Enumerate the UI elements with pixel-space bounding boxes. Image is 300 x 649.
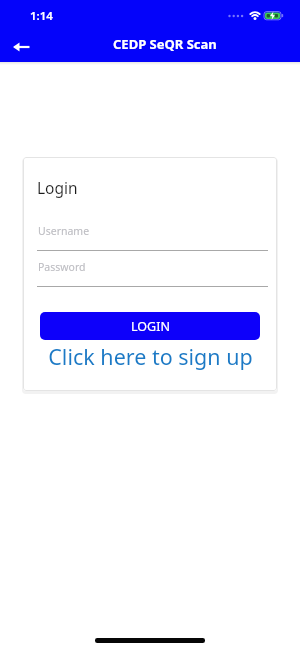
- staticText: 1:14: [30, 8, 53, 24]
- staticText: Click here to sign up: [48, 342, 253, 370]
- button[interactable]: Username: [37, 217, 268, 251]
- button[interactable]: [5, 35, 37, 59]
- staticText: Login: [37, 177, 78, 198]
- button[interactable]: LOGIN: [40, 312, 260, 340]
- button[interactable]: Click here to sign up: [23, 342, 277, 370]
- button[interactable]: Password: [37, 253, 268, 287]
- staticText: Password: [38, 260, 86, 274]
- staticText: CEDP SeQR Scan: [113, 35, 217, 53]
- staticText: LOGIN: [131, 318, 170, 335]
- staticText: Username: [38, 224, 90, 238]
